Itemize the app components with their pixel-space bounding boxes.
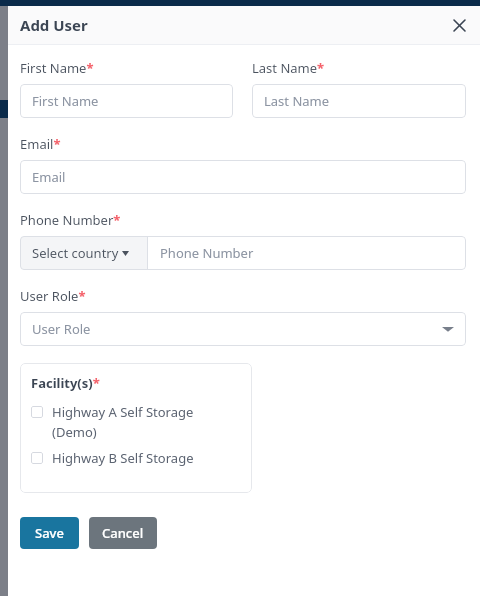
- button[interactable]: First Name: [20, 84, 233, 118]
- staticText: (Demo): [52, 423, 97, 441]
- staticText: Email*: [20, 135, 61, 153]
- staticText: First Name*: [20, 59, 94, 77]
- button[interactable]: Phone Number: [148, 236, 466, 270]
- button[interactable]: Select country: [20, 236, 147, 270]
- staticText: Highway A Self Storage: [52, 403, 194, 421]
- button[interactable]: Highway A Self Storage: [31, 401, 242, 445]
- staticText: First Name: [32, 92, 99, 110]
- staticText: Cancel: [102, 524, 144, 542]
- staticText: Last Name: [264, 92, 330, 110]
- staticText: Email: [32, 168, 66, 186]
- staticText: Save: [35, 524, 64, 542]
- staticText: Highway B Self Storage: [52, 449, 194, 467]
- staticText: Last Name*: [252, 59, 325, 77]
- staticText: Phone Number: [160, 244, 254, 262]
- staticText: Phone Number*: [20, 211, 121, 229]
- staticText: User Role: [32, 320, 91, 338]
- button[interactable]: Email: [20, 160, 466, 194]
- button[interactable]: Highway B Self Storage: [31, 447, 242, 469]
- button[interactable]: Cancel: [89, 517, 157, 549]
- button[interactable]: Save: [20, 517, 79, 549]
- staticText: User Role*: [20, 287, 86, 305]
- button[interactable]: Last Name: [252, 84, 466, 118]
- staticText: Add User: [20, 15, 88, 35]
- staticText: Facility(s)*: [31, 374, 100, 392]
- staticText: Select country: [32, 244, 119, 262]
- button[interactable]: User Role: [20, 312, 466, 346]
- button[interactable]: Close: [444, 10, 474, 40]
